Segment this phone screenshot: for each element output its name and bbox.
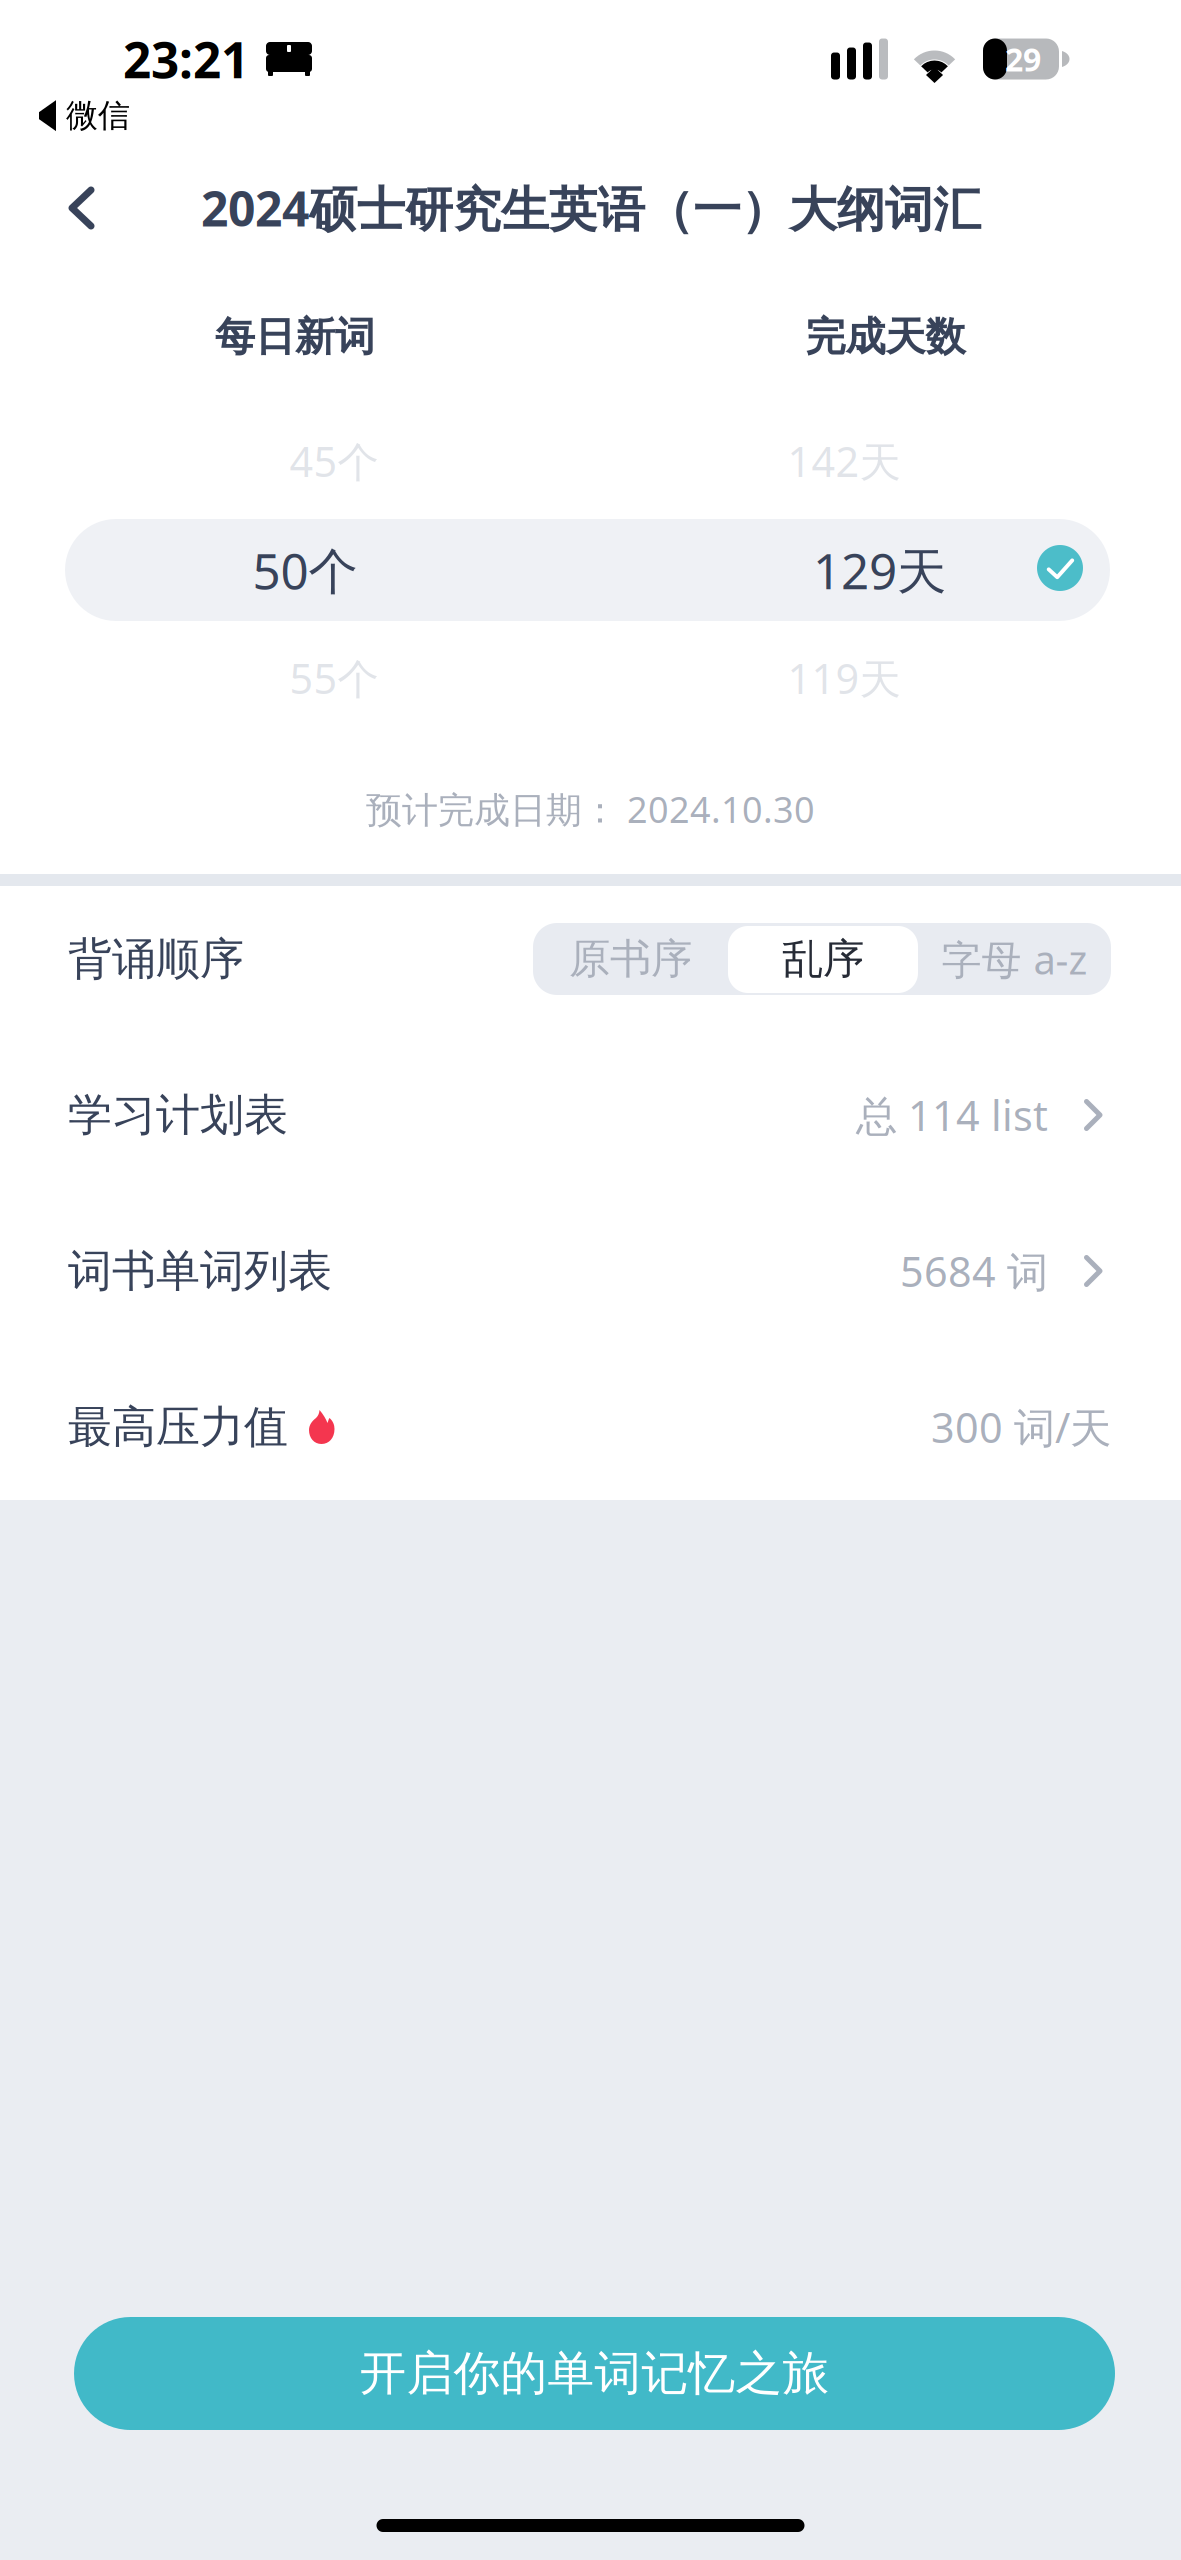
- staticText: 50个: [252, 537, 357, 603]
- staticText: 每日新词: [215, 312, 375, 361]
- staticText: 学习计划表: [68, 1088, 288, 1142]
- staticText: 119天: [787, 651, 900, 705]
- staticText: 300 词/天: [931, 1400, 1111, 1454]
- staticText: 142天: [787, 434, 900, 488]
- staticText: 最高压力值: [68, 1400, 288, 1454]
- staticText: 微信: [66, 96, 130, 135]
- staticText: 45个: [289, 434, 378, 488]
- staticText: 原书序: [569, 934, 692, 984]
- staticText: 5684 词: [900, 1244, 1048, 1298]
- staticText: 23:21: [123, 26, 249, 92]
- staticText: 开启你的单词记忆之旅: [359, 2345, 829, 2402]
- staticText: 完成天数: [805, 312, 965, 361]
- button[interactable]: 词书单词列表: [0, 1193, 1181, 1349]
- staticText: 55个: [289, 651, 378, 705]
- button[interactable]: 开启你的单词记忆之旅: [74, 2317, 1115, 2430]
- staticText: 乱序: [782, 934, 864, 984]
- staticText: 预计完成日期： 2024.10.30: [366, 785, 815, 833]
- button[interactable]: 最高压力值: [0, 1349, 1181, 1505]
- button[interactable]: 原书序: [533, 923, 728, 995]
- button[interactable]: Back: [0, 168, 127, 248]
- staticText: 字母 a-z: [941, 932, 1087, 985]
- staticText: 129天: [813, 537, 946, 603]
- button[interactable]: 字母 a-z: [918, 923, 1111, 995]
- button[interactable]: 乱序: [728, 923, 918, 995]
- button[interactable]: 学习计划表: [0, 1037, 1181, 1193]
- staticText: 词书单词列表: [68, 1244, 332, 1298]
- staticText: 29: [1005, 38, 1041, 80]
- staticText: 总 114 list: [856, 1088, 1048, 1142]
- staticText: 背诵顺序: [68, 932, 244, 986]
- staticText: 2024硕士研究生英语（一）大纲词汇: [201, 176, 981, 240]
